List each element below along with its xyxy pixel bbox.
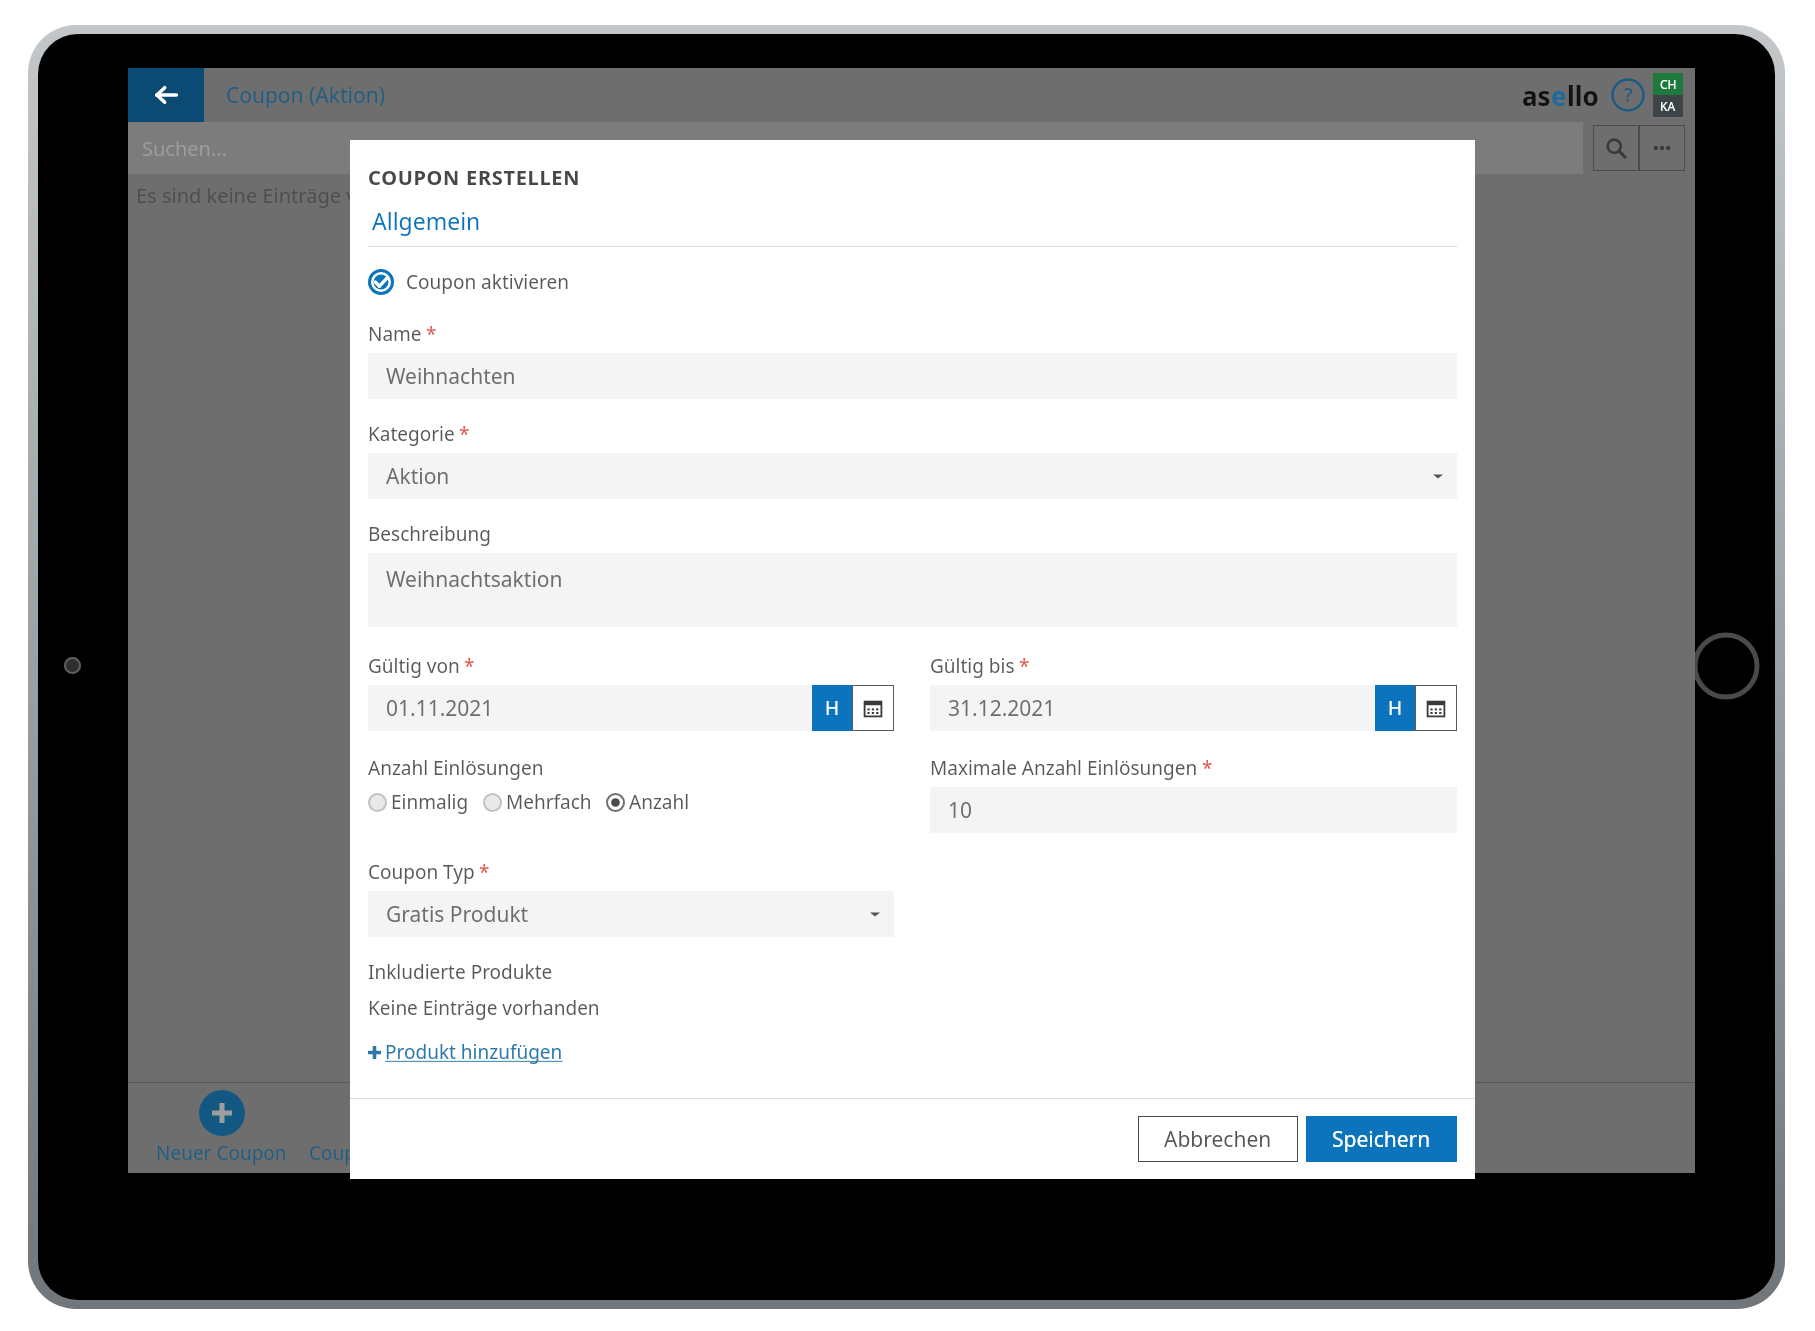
- button[interactable]: Gratis Produkt: [368, 891, 894, 937]
- staticText: Coupon Generator: [309, 1140, 476, 1166]
- button[interactable]: Weihnachten: [368, 353, 1457, 399]
- button[interactable]: 10: [930, 787, 1457, 833]
- staticText: Keine Einträge vorhanden: [368, 995, 600, 1021]
- button[interactable]: Mehrfach: [483, 789, 592, 815]
- staticText: Anzahl Einlösungen: [368, 755, 544, 781]
- staticText: Maximale Anzahl Einlösungen: [930, 755, 1198, 781]
- staticText: Es sind keine Einträge vorhanden: [136, 182, 449, 209]
- button[interactable]: Kalender: [852, 685, 894, 731]
- button[interactable]: Weihnachtsaktion: [368, 553, 1457, 627]
- button[interactable]: Aktion: [368, 453, 1457, 499]
- staticText: ?: [1624, 82, 1633, 108]
- staticText: Anzahl: [629, 789, 690, 815]
- staticText: Gratis Produkt: [386, 900, 529, 929]
- staticText: *: [464, 653, 475, 679]
- staticText: Suchen...: [142, 135, 228, 162]
- button[interactable]: Suchen...: [128, 122, 1583, 174]
- staticText: Weihnachten: [386, 362, 516, 391]
- button[interactable]: H: [1375, 685, 1415, 731]
- staticText: 31.12.2021: [948, 694, 1056, 723]
- staticText: Aktion: [386, 462, 450, 491]
- staticText: Einmalig: [391, 789, 469, 815]
- button[interactable]: Zurück: [128, 68, 204, 122]
- button[interactable]: Hilfe: [1611, 78, 1645, 112]
- button[interactable]: Coupon aktivieren: [368, 269, 569, 295]
- button[interactable]: Speichern: [1306, 1116, 1457, 1162]
- staticText: Abbrechen: [1164, 1125, 1272, 1154]
- staticText: 01.11.2021: [386, 694, 494, 723]
- staticText: Mehrfach: [506, 789, 592, 815]
- staticText: Speichern: [1332, 1125, 1431, 1154]
- button[interactable]: Einmalig: [368, 789, 469, 815]
- button[interactable]: H: [812, 685, 852, 731]
- staticText: Coupon Typ: [368, 859, 475, 885]
- staticText: Produkt hinzufügen: [385, 1039, 563, 1065]
- staticText: *: [459, 421, 470, 447]
- button[interactable]: Allgemein: [372, 205, 481, 236]
- staticText: Weihnachtsaktion: [386, 565, 563, 594]
- staticText: Name: [368, 321, 422, 347]
- staticText: Coupon aktivieren: [406, 269, 569, 295]
- button[interactable]: Neuer Coupon: [150, 1090, 293, 1166]
- staticText: H: [825, 695, 840, 721]
- staticText: CH: [1660, 76, 1677, 92]
- button[interactable]: Abbrechen: [1138, 1116, 1298, 1162]
- button[interactable]: Anzahl: [606, 789, 690, 815]
- button[interactable]: Coupon Generator: [303, 1090, 482, 1166]
- button[interactable]: Kalender: [1415, 685, 1457, 731]
- staticText: e: [1551, 78, 1567, 113]
- staticText: *: [1202, 755, 1213, 781]
- button[interactable]: Mehr Optionen: [1639, 125, 1685, 171]
- button[interactable]: Suchen: [1593, 125, 1639, 171]
- staticText: *: [426, 321, 437, 347]
- staticText: Gültig von: [368, 653, 460, 679]
- button[interactable]: 01.11.2021: [368, 685, 812, 731]
- staticText: Coupon (Aktion): [226, 81, 385, 110]
- staticText: H: [1388, 695, 1403, 721]
- staticText: Inkludierte Produkte: [368, 959, 553, 985]
- button[interactable]: Produkt hinzufügen: [368, 1039, 563, 1065]
- staticText: *: [1019, 653, 1030, 679]
- staticText: Beschreibung: [368, 521, 491, 547]
- staticText: COUPON ERSTELLEN: [368, 164, 581, 191]
- staticText: llo: [1567, 78, 1599, 113]
- staticText: Gültig bis: [930, 653, 1015, 679]
- staticText: Kategorie: [368, 421, 455, 447]
- staticText: 10: [948, 796, 973, 825]
- button[interactable]: 31.12.2021: [930, 685, 1375, 731]
- staticText: Neuer Coupon: [156, 1140, 287, 1166]
- staticText: as: [1522, 78, 1551, 113]
- staticText: *: [479, 859, 490, 885]
- staticText: KA: [1660, 98, 1676, 114]
